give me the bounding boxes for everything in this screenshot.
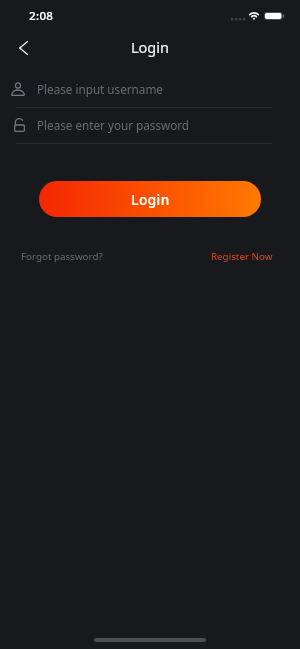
staticText: 2:08 [29,8,54,24]
button[interactable]: Please enter your password [0,110,300,139]
button[interactable]: Back [7,32,39,64]
button[interactable]: Login [39,181,261,217]
staticText: Please input username [37,81,163,97]
button[interactable]: Please input username [0,74,300,103]
button[interactable]: Register Now [205,245,279,268]
staticText: Login [131,37,169,57]
staticText: Please enter your password [37,117,190,133]
staticText: Forgot password? [21,250,103,263]
button[interactable]: Forgot password? [15,245,109,268]
staticText: Login [131,190,170,209]
staticText: Register Now [211,250,273,263]
